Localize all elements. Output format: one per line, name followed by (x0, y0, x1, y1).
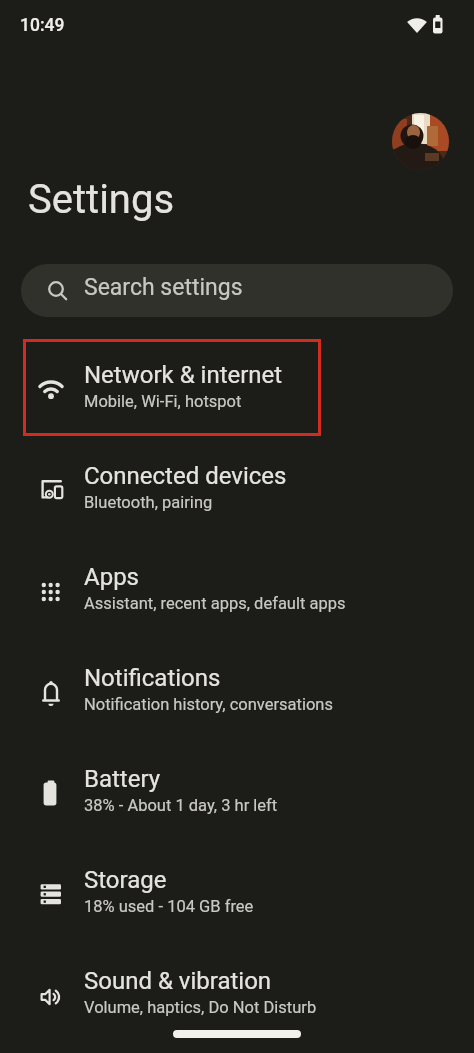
staticText: 18% used - 104 GB free (84, 897, 254, 916)
staticText: Notification history, conversations (84, 695, 333, 714)
button[interactable]: Apps (0, 542, 474, 643)
staticText: Volume, haptics, Do Not Disturb (84, 998, 317, 1017)
staticText: Notifications (84, 664, 221, 692)
button[interactable]: Search settings (21, 264, 453, 317)
staticText: Apps (84, 563, 139, 591)
staticText: Connected devices (84, 462, 287, 490)
button[interactable]: Connected devices (0, 441, 474, 542)
button[interactable]: Battery (0, 744, 474, 845)
button[interactable]: Notifications (0, 643, 474, 744)
staticText: Sound & vibration (84, 967, 272, 995)
staticText: Assistant, recent apps, default apps (84, 594, 346, 613)
button[interactable]: Storage (0, 845, 474, 946)
button[interactable]: Sound & vibration (0, 946, 474, 1047)
button[interactable]: Network & internet (0, 340, 474, 441)
staticText: Search settings (84, 274, 243, 301)
staticText: Bluetooth, pairing (84, 493, 213, 512)
button[interactable] (392, 113, 449, 170)
staticText: Battery (84, 765, 161, 793)
staticText: Mobile, Wi-Fi, hotspot (84, 392, 242, 411)
staticText: Settings (28, 176, 175, 223)
staticText: Network & internet (84, 361, 283, 389)
staticText: Storage (84, 866, 167, 894)
staticText: 10:49 (20, 15, 65, 36)
staticText: 38% - About 1 day, 3 hr left (84, 796, 278, 815)
